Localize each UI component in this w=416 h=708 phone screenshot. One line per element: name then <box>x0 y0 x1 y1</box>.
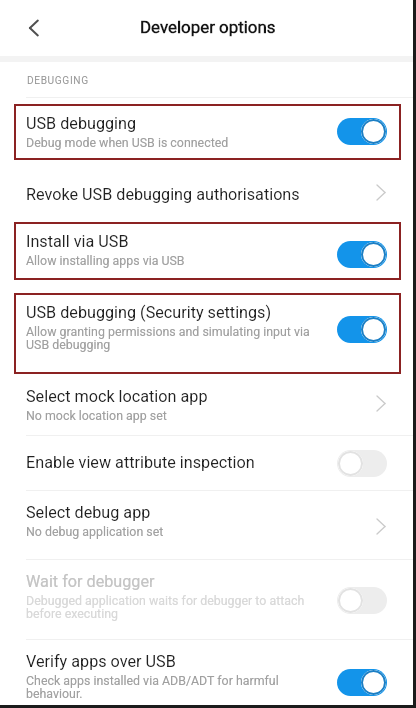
staticText: Select debug app <box>26 503 151 522</box>
staticText: Wait for debugger <box>26 572 155 591</box>
staticText: USB debugging <box>26 114 137 133</box>
staticText: Install via USB <box>26 232 129 251</box>
button[interactable]: Enable view attribute inspection <box>0 436 416 491</box>
staticText: Allow installing apps via USB <box>26 253 185 268</box>
staticText: Select mock location app <box>26 387 208 406</box>
button[interactable]: Verify apps over USB <box>0 640 416 708</box>
staticText: Check apps installed via ADB/ADT for har… <box>26 673 279 701</box>
staticText: Revoke USB debugging authorisations <box>26 185 300 204</box>
staticText: No debug application set <box>26 524 164 539</box>
button[interactable]: Select debug app <box>0 491 416 560</box>
button[interactable]: USB debugging <box>0 104 416 159</box>
staticText: Verify apps over USB <box>26 652 176 671</box>
staticText: Developer options <box>140 17 276 37</box>
staticText: DEBUGGING <box>27 75 89 87</box>
staticText: USB debugging (Security settings) <box>26 303 272 322</box>
staticText: Allow granting permissions and simulatin… <box>26 324 310 352</box>
staticText: Debugged application waits for debugger … <box>26 593 305 621</box>
staticText: Enable view attribute inspection <box>26 453 255 472</box>
button[interactable]: Revoke USB debugging authorisations <box>0 159 416 222</box>
button[interactable]: Select mock location app <box>0 373 416 436</box>
staticText: Debug mode when USB is connected <box>26 135 229 150</box>
staticText: No mock location app set <box>26 408 167 423</box>
button[interactable]: USB debugging (Security settings) <box>0 293 416 373</box>
button[interactable]: Back <box>16 10 52 46</box>
button[interactable]: Install via USB <box>0 222 416 293</box>
button[interactable]: Wait for debugger <box>0 560 416 640</box>
